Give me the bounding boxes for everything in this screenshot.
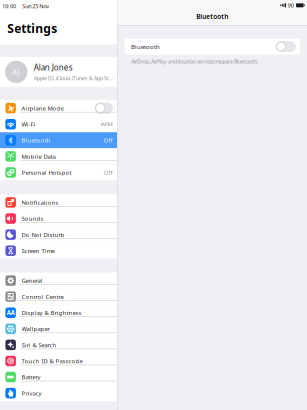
button[interactable]: Wallpaper — [0, 321, 117, 337]
staticText: Mobile Data — [21, 152, 55, 160]
staticText: Sun 25 Nov — [22, 2, 49, 10]
staticText: Screen Time — [21, 247, 54, 255]
button[interactable]: Touch ID & Passcode — [0, 353, 117, 369]
staticText: Settings — [7, 20, 57, 36]
button[interactable]: Do Not Disturb — [0, 227, 117, 243]
staticText: Do Not Disturb — [21, 231, 64, 239]
staticText: AJ — [13, 67, 20, 76]
button[interactable]: Control Centre — [0, 289, 117, 305]
staticText: Airplane Mode — [21, 104, 63, 112]
button[interactable]: Battery — [0, 369, 117, 385]
button[interactable]: Mobile Data — [0, 148, 117, 164]
button[interactable]: Bluetooth — [0, 132, 117, 148]
button[interactable]: General — [0, 272, 117, 289]
button[interactable]: Personal Hotspot — [0, 164, 117, 180]
staticText: Apple ID, iCloud, iTunes & App St… — [34, 74, 113, 82]
button[interactable]: Screen Time — [0, 243, 117, 259]
staticText: Wi-Fi — [21, 120, 35, 128]
staticText: Bluetooth — [131, 43, 160, 51]
staticText: AirDrop, AirPlay and location services r… — [131, 58, 258, 65]
staticText: 10:00 — [2, 2, 16, 10]
staticText: General — [21, 277, 42, 285]
staticText: Notifications — [21, 198, 58, 206]
staticText: Privacy — [21, 389, 41, 397]
button[interactable]: Siri & Search — [0, 337, 117, 353]
staticText: Control Centre — [21, 293, 63, 301]
staticText: Alan Jones — [34, 62, 73, 73]
staticText: Bluetooth — [21, 136, 50, 144]
staticText: W/M — [101, 120, 113, 128]
staticText: Off — [104, 136, 113, 144]
button[interactable]: AJ — [0, 57, 117, 87]
button[interactable]: Privacy — [0, 385, 117, 401]
button[interactable]: AA — [0, 305, 117, 321]
staticText: Off — [104, 168, 113, 176]
button[interactable]: Bluetooth — [125, 39, 300, 54]
staticText: Siri & Search — [21, 341, 56, 349]
button[interactable]: Notifications — [0, 194, 117, 210]
button[interactable]: Wi-Fi — [0, 116, 117, 132]
staticText: Battery — [21, 373, 40, 381]
staticText: Touch ID & Passcode — [21, 357, 82, 365]
button[interactable]: Sounds — [0, 210, 117, 227]
staticText: Wallpaper — [21, 325, 49, 333]
button[interactable]: Airplane Mode — [0, 100, 117, 116]
staticText: Sounds — [21, 214, 43, 222]
staticText: Display & Brightness — [21, 309, 81, 317]
staticText: 90 — [288, 1, 294, 9]
staticText: AA — [7, 308, 15, 317]
staticText: Personal Hotspot — [21, 168, 71, 176]
staticText: Bluetooth — [196, 12, 228, 21]
